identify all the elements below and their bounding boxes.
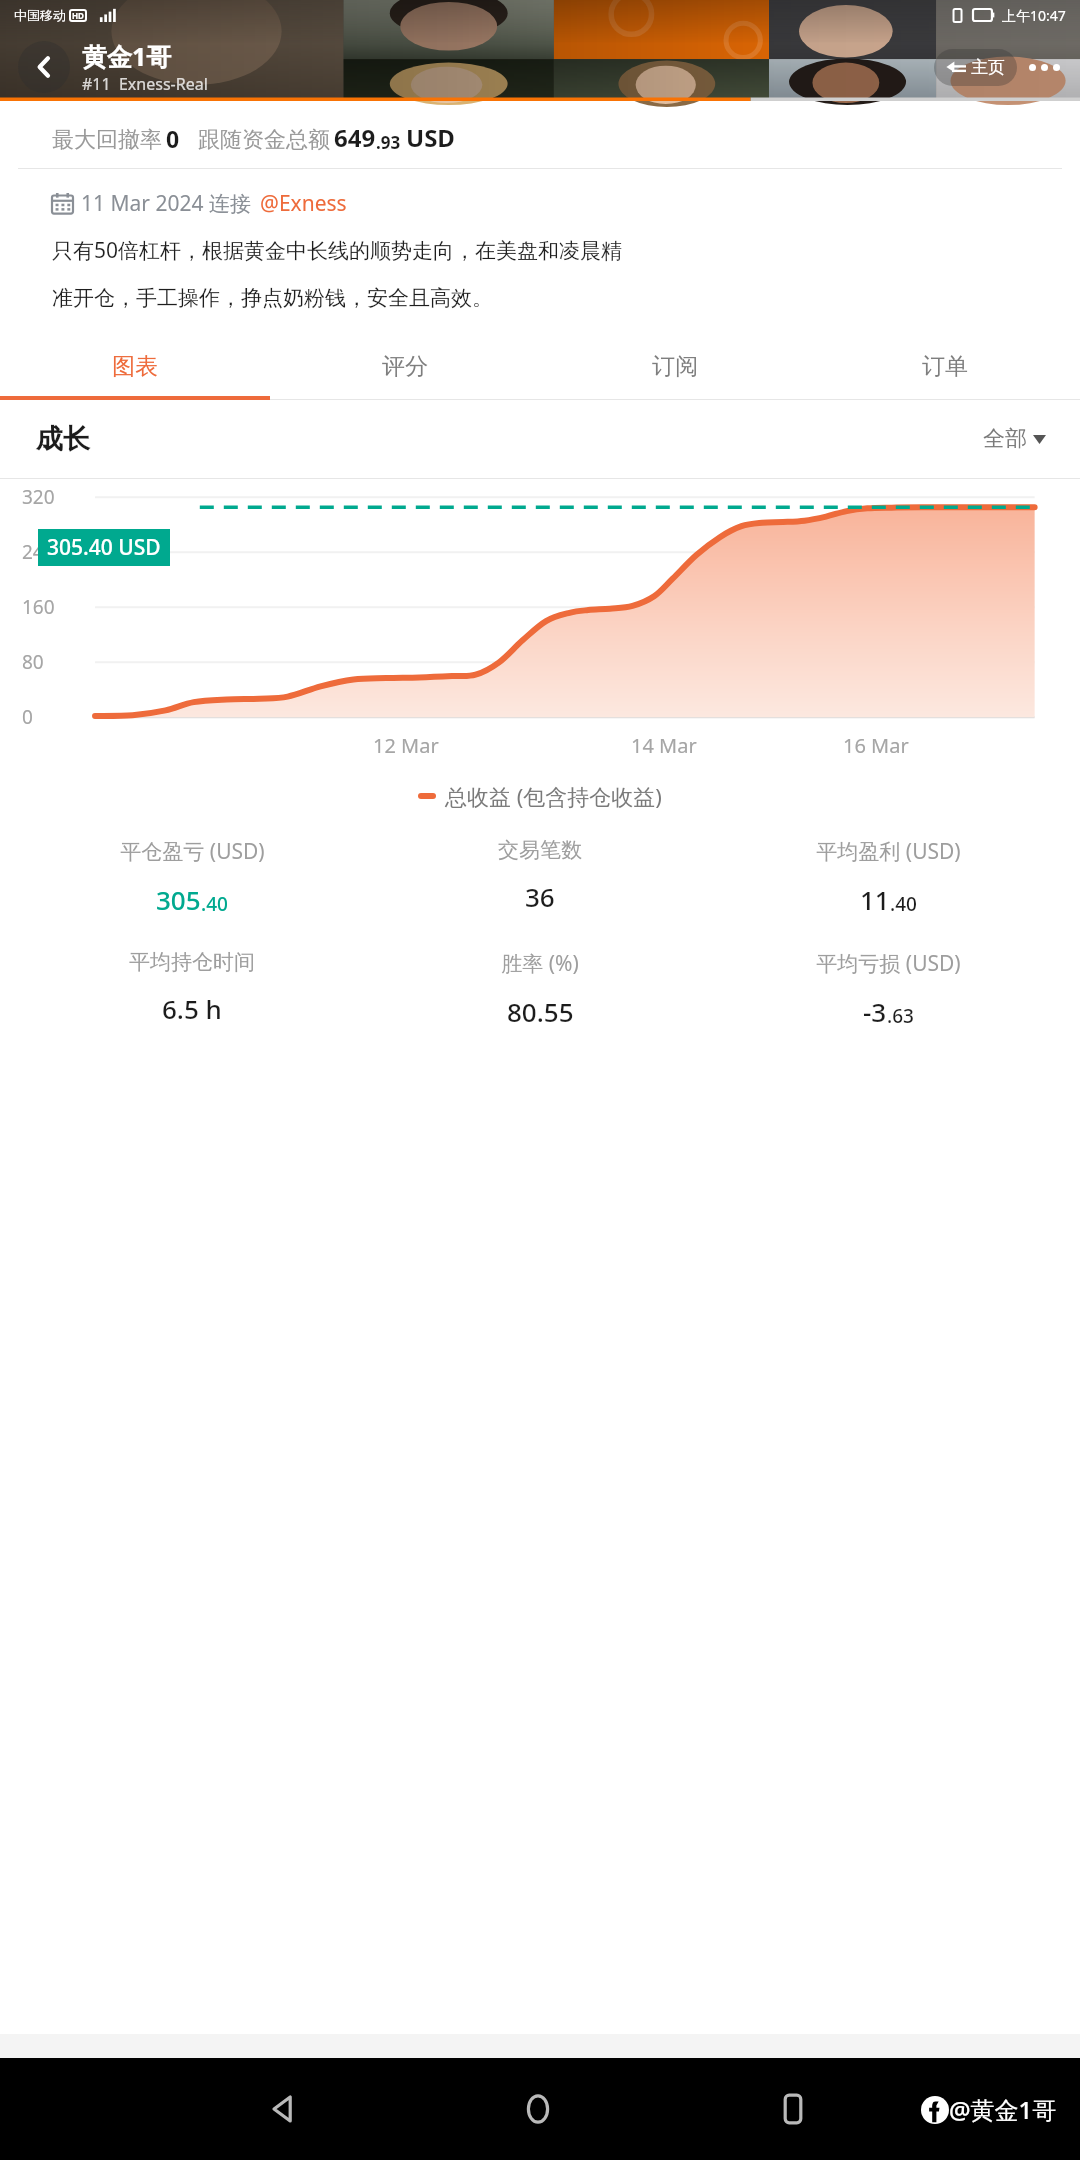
staticText: USD xyxy=(406,121,455,154)
staticText: 240 xyxy=(22,539,55,565)
staticText: 交易笔数 xyxy=(498,837,582,863)
staticText: 11 Mar 2024 连接 xyxy=(81,189,251,218)
button[interactable]: 更多选项 xyxy=(1021,52,1068,83)
staticText: .40 xyxy=(890,891,917,917)
staticText: 跟随资金总额 xyxy=(198,126,330,154)
staticText: 649 xyxy=(334,121,376,154)
staticText: 总收益 (包含持仓收益) xyxy=(445,781,662,811)
staticText: 最大回撤率 xyxy=(52,126,162,154)
staticText: 80.55 xyxy=(507,994,574,1029)
staticText: HD xyxy=(72,10,84,21)
staticText: @黄金1哥 xyxy=(949,2093,1057,2126)
staticText: 只有50倍杠杆，根据黄金中长线的顺势走向，在美盘和凌晨精 xyxy=(52,236,623,265)
staticText: 11 xyxy=(860,882,890,917)
button[interactable]: 图表 xyxy=(0,337,270,396)
staticText: 320 xyxy=(22,484,55,510)
staticText: 12 Mar xyxy=(373,732,439,759)
staticText: 0 xyxy=(166,123,180,154)
staticText: 成长 xyxy=(36,422,90,456)
staticText: 6.5 h xyxy=(162,991,222,1026)
staticText: 0 xyxy=(22,704,33,730)
staticText: -3 xyxy=(863,994,887,1029)
staticText: #11 Exness-Real xyxy=(82,73,208,95)
staticText: 80 xyxy=(22,649,44,675)
staticText: 305.40 USD xyxy=(47,533,161,562)
staticText: 16 Mar xyxy=(843,732,909,759)
staticText: 36 xyxy=(525,879,555,914)
staticText: 平均持仓时间 xyxy=(129,949,255,975)
staticText: 准开仓，手工操作，挣点奶粉钱，安全且高效。 xyxy=(52,285,493,311)
staticText: 主页 xyxy=(971,57,1005,78)
button[interactable]: 最近任务 xyxy=(762,2078,824,2140)
button[interactable]: 全部 xyxy=(983,425,1046,453)
staticText: 胜率 (%) xyxy=(501,949,579,978)
staticText: 平均盈利 (USD) xyxy=(816,837,961,866)
button[interactable]: 评分 xyxy=(270,337,540,396)
staticText: .93 xyxy=(376,131,401,154)
staticText: 平均亏损 (USD) xyxy=(816,949,961,978)
staticText: 平仓盈亏 (USD) xyxy=(120,837,265,866)
staticText: .40 xyxy=(201,891,228,917)
staticText: 全部 xyxy=(983,425,1027,453)
button[interactable]: 返回 xyxy=(252,2078,314,2140)
staticText: 305 xyxy=(156,882,201,917)
staticText: 中国移动 xyxy=(14,7,66,23)
staticText: 评分 xyxy=(382,352,428,381)
staticText: 上午10:47 xyxy=(1002,6,1066,25)
staticText: 订单 xyxy=(922,352,968,381)
staticText: 160 xyxy=(22,594,55,620)
staticText: @Exness xyxy=(260,189,347,218)
button[interactable]: 订单 xyxy=(810,337,1080,396)
button[interactable]: 主页 xyxy=(934,49,1017,86)
button[interactable]: 主屏幕 xyxy=(507,2078,569,2140)
staticText: .63 xyxy=(887,1003,914,1029)
button[interactable]: 返回 xyxy=(18,41,70,93)
staticText: 订阅 xyxy=(652,352,698,381)
staticText: 14 Mar xyxy=(631,732,697,759)
staticText: 黄金1哥 xyxy=(82,39,172,73)
button[interactable]: 订阅 xyxy=(540,337,810,396)
staticText: 图表 xyxy=(112,352,158,381)
